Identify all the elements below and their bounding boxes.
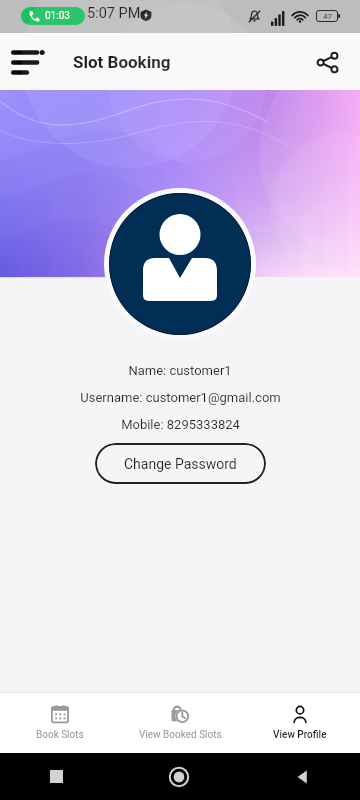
staticText: View Profile <box>273 729 327 741</box>
button[interactable]: Menu <box>0 35 54 89</box>
staticText: Username: customer1@gmail.com <box>80 390 281 405</box>
staticText: 01:03 <box>45 10 70 22</box>
button[interactable]: Back <box>294 769 310 785</box>
staticText: Name: customer1 <box>128 363 232 378</box>
button[interactable]: Change Password <box>95 443 266 484</box>
button[interactable]: Book Slots <box>0 692 120 753</box>
staticText: Slot Booking <box>73 52 171 72</box>
staticText: View Booked Slots <box>139 729 222 741</box>
button[interactable]: Home <box>169 767 189 787</box>
button[interactable]: Share <box>303 38 351 86</box>
staticText: 47 <box>323 12 332 21</box>
button[interactable]: View Booked Slots <box>120 692 240 753</box>
staticText: Mobile: 8295333824 <box>121 417 240 432</box>
staticText: Change Password <box>124 456 237 472</box>
staticText: Book Slots <box>36 729 84 741</box>
staticText: 5:07 PM <box>87 5 141 22</box>
button[interactable]: View Profile <box>240 692 360 753</box>
